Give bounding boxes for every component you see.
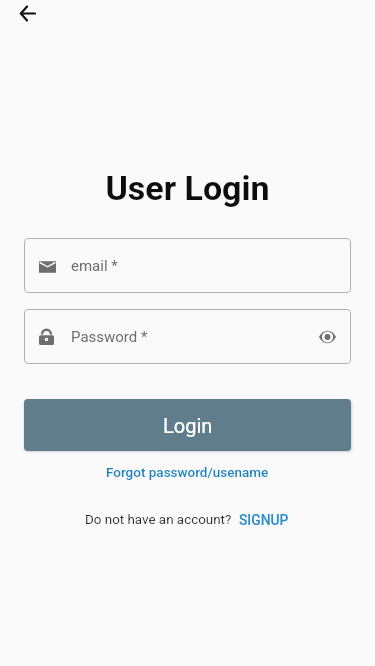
button[interactable]: Forgot password/usename <box>100 461 275 483</box>
button[interactable]: Show password <box>314 324 340 350</box>
staticText: email * <box>71 257 118 275</box>
button[interactable]: SIGNUP <box>237 509 291 531</box>
button[interactable]: email * <box>24 238 351 293</box>
button[interactable]: Password * <box>24 309 351 364</box>
staticText: User Login <box>0 168 375 208</box>
button[interactable]: Back <box>9 0 45 31</box>
staticText: Password * <box>71 328 314 346</box>
staticText: Login <box>163 414 213 437</box>
staticText: Do not have an account? <box>85 512 232 528</box>
button[interactable]: Login <box>24 399 351 451</box>
